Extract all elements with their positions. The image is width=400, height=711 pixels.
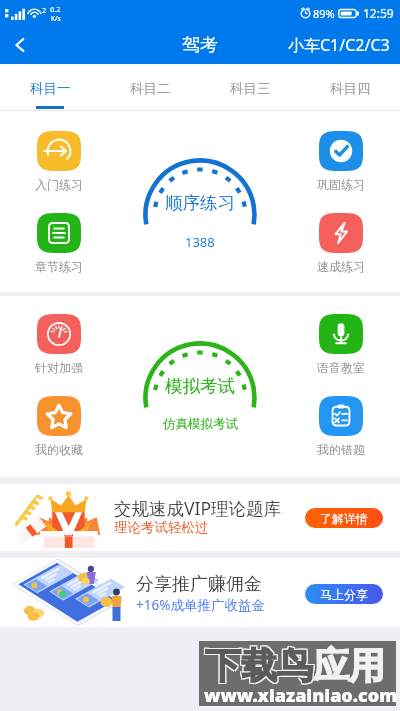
button[interactable]: 巩固练习 xyxy=(301,131,381,192)
staticText: 了解详情 xyxy=(320,511,368,526)
staticText: 马上分享 xyxy=(320,587,368,602)
staticText: 科目三 xyxy=(230,80,271,97)
staticText: 分享推广赚佣金 xyxy=(136,573,262,596)
staticText: 2 xyxy=(42,6,47,16)
staticText: www.xiazainiao.com xyxy=(204,683,398,708)
staticText: 仿真模拟考试 xyxy=(163,416,238,432)
staticText: 入门练习 xyxy=(35,177,83,192)
staticText: 速成练习 xyxy=(317,259,365,274)
button[interactable]: 速成练习 xyxy=(301,213,381,274)
button[interactable]: 针对加强 xyxy=(19,314,99,375)
staticText: 下载鸟 xyxy=(205,643,313,688)
staticText: 模拟考试 xyxy=(165,375,235,397)
staticText: 科目二 xyxy=(130,80,171,97)
staticText: 驾考 xyxy=(182,34,218,57)
button[interactable]: 我的收藏 xyxy=(19,396,99,457)
button[interactable]: 科目二 xyxy=(100,64,200,111)
staticText: 89% xyxy=(313,6,335,21)
button[interactable]: 科目一 xyxy=(0,64,100,111)
staticText: 应用 xyxy=(313,643,385,688)
staticText: 科目一 xyxy=(30,80,71,97)
button[interactable]: 入门练习 xyxy=(19,131,99,192)
button[interactable]: 科目四 xyxy=(300,64,400,111)
staticText: 1388 xyxy=(185,233,215,251)
staticText: 我的错题 xyxy=(317,442,365,457)
staticText: 下载鸟 xyxy=(204,644,312,689)
staticText: 12:59 xyxy=(363,5,394,21)
staticText: 下载鸟 xyxy=(206,644,314,689)
staticText: 巩固练习 xyxy=(317,177,365,192)
staticText: 小车C1/C2/C3 xyxy=(288,34,390,56)
button[interactable]: 了解详情 xyxy=(305,508,383,528)
staticText: 理论考试轻松过 xyxy=(114,519,209,536)
staticText: 下载鸟 xyxy=(204,642,312,687)
staticText: 章节练习 xyxy=(35,259,83,274)
staticText: 针对加强 xyxy=(35,360,83,375)
staticText: 交规速成VIP理论题库 xyxy=(114,496,282,520)
button[interactable]: 科目三 xyxy=(200,64,300,111)
button[interactable]: Back xyxy=(0,26,40,64)
staticText: 我的收藏 xyxy=(35,442,83,457)
button[interactable]: 我的错题 xyxy=(301,396,381,457)
staticText: 顺序练习 xyxy=(165,192,235,214)
staticText: K/s xyxy=(51,14,61,23)
button[interactable]: 小车C1/C2/C3 xyxy=(280,26,400,64)
button[interactable]: 章节练习 xyxy=(19,213,99,274)
staticText: 科目四 xyxy=(330,80,371,97)
staticText: 下载鸟 xyxy=(206,642,314,687)
staticText: 6.2 xyxy=(50,4,61,14)
button[interactable]: 马上分享 xyxy=(305,584,383,604)
staticText: +16%成单推广收益金 xyxy=(136,596,265,614)
button[interactable]: 语音教室 xyxy=(301,314,381,375)
staticText: 语音教室 xyxy=(317,360,365,375)
